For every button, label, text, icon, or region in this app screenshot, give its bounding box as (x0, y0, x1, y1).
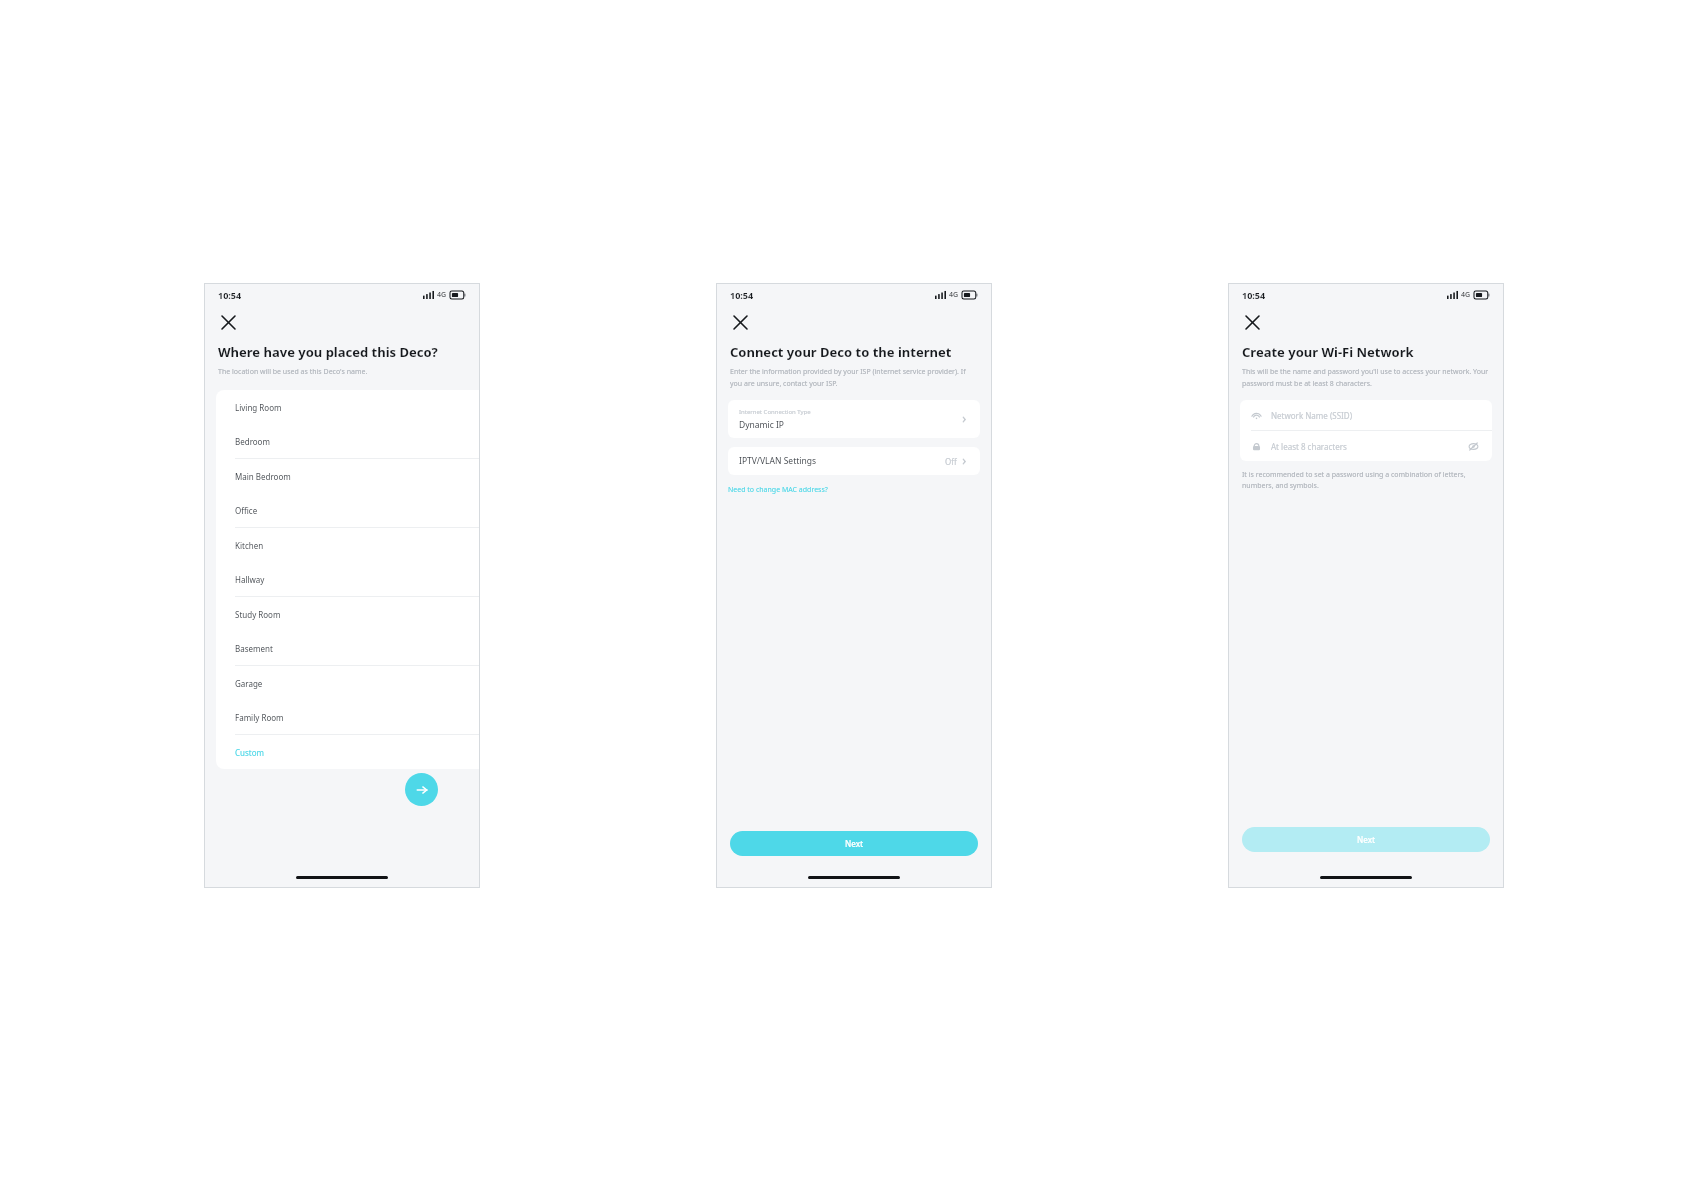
button[interactable]: Family Room (216, 700, 480, 734)
staticText: At least 8 characters (1271, 441, 1465, 452)
button[interactable]: Basement (216, 631, 480, 665)
staticText: Office (235, 505, 258, 516)
button[interactable]: Bedroom (216, 424, 480, 458)
staticText: Kitchen (235, 540, 264, 551)
staticText: 10:54 (218, 289, 242, 301)
button[interactable]: Network Name (SSID) (1240, 400, 1492, 430)
staticText: Garage (235, 678, 263, 689)
button[interactable]: Office (216, 493, 480, 527)
staticText: Living Room (235, 402, 282, 413)
button[interactable]: Main Bedroom (216, 459, 480, 493)
button[interactable]: Next (1242, 827, 1490, 852)
staticText: Off (945, 456, 957, 467)
button[interactable]: Close (1239, 309, 1265, 335)
staticText: Bedroom (235, 436, 270, 447)
staticText: Need to change MAC address? (728, 485, 828, 495)
button[interactable]: Garage (216, 666, 480, 700)
button[interactable]: Next (405, 773, 438, 806)
staticText: IPTV/VLAN Settings (739, 455, 945, 467)
staticText: 4G (949, 290, 959, 300)
staticText: The location will be used as this Deco's… (218, 367, 368, 377)
staticText: Internet Connection Type (739, 408, 811, 416)
staticText: Dynamic IP (739, 419, 785, 431)
staticText: Connect your Deco to the internet (730, 343, 952, 361)
button[interactable]: IPTV/VLAN Settings (728, 447, 980, 475)
button[interactable]: Close (215, 309, 241, 335)
staticText: Where have you placed this Deco? (218, 343, 438, 361)
staticText: Next (1357, 834, 1376, 845)
button[interactable]: Close (727, 309, 753, 335)
staticText: Main Bedroom (235, 471, 291, 482)
button[interactable]: At least 8 characters (1240, 431, 1492, 461)
staticText: It is recommended to set a password usin… (1242, 470, 1490, 490)
button[interactable]: Study Room (216, 597, 480, 631)
button[interactable]: Custom (216, 735, 480, 769)
button[interactable]: Need to change MAC address? (728, 485, 828, 495)
staticText: Create your Wi-Fi Network (1242, 343, 1414, 361)
staticText: 10:54 (730, 289, 754, 301)
staticText: Network Name (SSID) (1271, 410, 1353, 421)
staticText: Family Room (235, 712, 284, 723)
staticText: Study Room (235, 609, 281, 620)
staticText: This will be the name and password you'l… (1242, 367, 1490, 388)
staticText: Next (845, 838, 864, 849)
button[interactable]: Living Room (216, 390, 480, 424)
button[interactable]: Next (730, 831, 978, 856)
staticText: Hallway (235, 574, 265, 585)
staticText: Custom (235, 747, 265, 758)
staticText: 10:54 (1242, 289, 1266, 301)
button[interactable]: Kitchen (216, 528, 480, 562)
staticText: 4G (437, 290, 447, 300)
button[interactable]: Show password (1465, 438, 1481, 454)
staticText: Enter the information provided by your I… (730, 367, 978, 388)
button[interactable]: Hallway (216, 562, 480, 596)
staticText: Basement (235, 643, 273, 654)
staticText: 4G (1461, 290, 1471, 300)
button[interactable]: Internet Connection Type (728, 400, 980, 438)
